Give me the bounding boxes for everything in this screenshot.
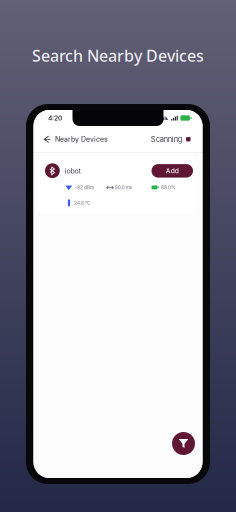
staticText: 88.0% — [161, 184, 176, 190]
staticText: -92 dBm — [75, 185, 94, 190]
staticText: 90.0 ms — [115, 185, 133, 190]
staticText: 4:20 — [48, 114, 62, 122]
button[interactable]: Filter — [172, 432, 195, 455]
staticText: Nearby Devices — [55, 135, 108, 143]
button[interactable]: Add — [151, 164, 193, 178]
staticText: Scanning — [151, 135, 183, 144]
staticText: Add — [166, 167, 179, 175]
button[interactable]: Scanning — [151, 126, 202, 152]
staticText: iobot — [64, 167, 80, 175]
button[interactable]: Nearby Devices — [33, 126, 114, 152]
staticText: 24.6 °C — [74, 200, 91, 206]
staticText: Search Nearby Devices — [32, 45, 204, 66]
